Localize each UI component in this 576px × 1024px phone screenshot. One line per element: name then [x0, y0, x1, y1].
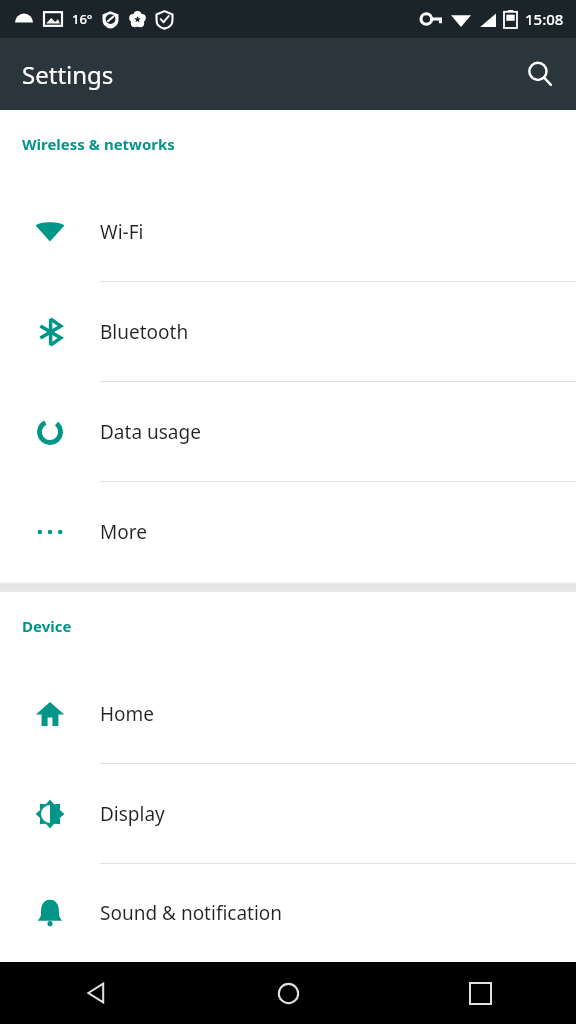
staticText: 15:08 [525, 9, 564, 29]
staticText: Bluetooth [100, 319, 189, 345]
staticText: Data usage [100, 419, 201, 445]
staticText: Device [22, 616, 72, 636]
button[interactable]: Bluetooth [0, 282, 576, 382]
button[interactable]: Search [514, 48, 566, 100]
button[interactable]: Sound & notification [0, 864, 576, 962]
button[interactable]: Recent apps [384, 962, 576, 1024]
staticText: More [100, 519, 147, 545]
button[interactable]: Display [0, 764, 576, 864]
button[interactable]: Data usage [0, 382, 576, 482]
staticText: Home [100, 701, 155, 727]
button[interactable]: More [0, 482, 576, 582]
staticText: Display [100, 801, 165, 827]
staticText: Wireless & networks [22, 134, 175, 154]
button[interactable]: Back [0, 962, 192, 1024]
staticText: 16° [72, 10, 93, 28]
button[interactable]: Wi-Fi [0, 182, 576, 282]
button[interactable]: Home [0, 664, 576, 764]
button[interactable]: Home [192, 962, 384, 1024]
staticText: Wi-Fi [100, 219, 144, 245]
staticText: Sound & notification [100, 900, 283, 926]
staticText: Settings [22, 58, 114, 91]
